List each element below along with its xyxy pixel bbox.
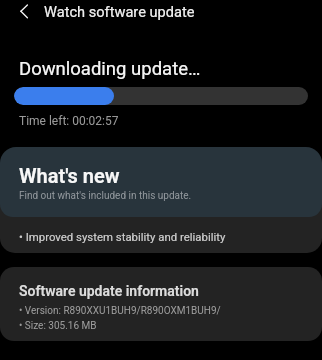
button[interactable]: Back [11, 0, 34, 23]
staticText: Downloading update… [19, 58, 201, 80]
staticText: Software update information [19, 283, 199, 299]
staticText: Watch software update [44, 3, 195, 20]
staticText: • Improved system stability and reliabil… [19, 230, 226, 243]
staticText: • Version: R890XXU1BUH9/R890OXM1BUH9/ [19, 305, 221, 317]
staticText: What's new [19, 164, 120, 187]
staticText: Find out what's included in this update. [19, 190, 192, 202]
button[interactable]: What's new [0, 147, 322, 217]
staticText: • Size: 305.16 MB [19, 320, 97, 332]
button[interactable]: • Improved system stability and reliabil… [0, 200, 322, 253]
staticText: Time left: 00:02:57 [19, 114, 119, 128]
